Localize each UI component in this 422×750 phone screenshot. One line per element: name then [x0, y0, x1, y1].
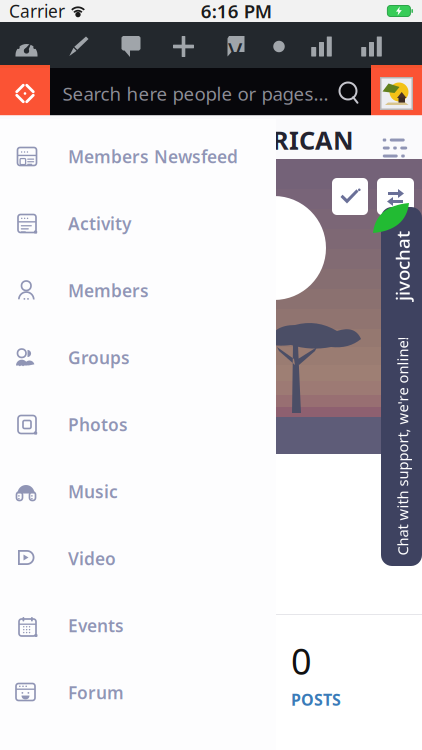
button[interactable]: Forum [0, 659, 276, 726]
button[interactable]: Profile [371, 68, 422, 119]
button[interactable]: Menu [384, 137, 406, 158]
button[interactable]: Music [0, 458, 276, 525]
staticText: Events [68, 614, 124, 637]
button[interactable]: Dashboard [0, 26, 53, 66]
button[interactable]: New [157, 26, 210, 66]
staticText: AFRICAN [240, 123, 354, 157]
staticText: Members Newsfeed [68, 145, 238, 168]
button[interactable]: More [261, 26, 297, 66]
button[interactable]: Photos [0, 391, 276, 458]
button[interactable]: Groups [0, 324, 276, 391]
staticText: jivochat [367, 254, 422, 278]
button[interactable]: Yoast SEO [210, 26, 261, 66]
staticText: 6:16 PM [201, 0, 272, 23]
button[interactable]: Close [0, 68, 50, 119]
button[interactable]: Analytics [346, 26, 397, 66]
staticText: Music [68, 480, 118, 503]
button[interactable]: Members [0, 257, 276, 324]
staticText: 0 [291, 637, 312, 685]
staticText: Video [68, 547, 116, 570]
staticText: Members [68, 279, 149, 302]
button[interactable]: Comments [105, 26, 157, 66]
staticText: Search here people or pages... [62, 81, 328, 106]
staticText: Groups [68, 346, 130, 369]
staticText: Carrier [9, 0, 65, 22]
button[interactable]: Share [377, 178, 414, 215]
button[interactable]: Members Newsfeed [0, 123, 276, 190]
button[interactable]: Accept [332, 178, 368, 215]
button[interactable]: Customize [53, 26, 105, 66]
button[interactable]: Chat with support [381, 207, 422, 566]
staticText: THE NETWORK* [240, 157, 333, 173]
staticText: y [228, 29, 242, 66]
button[interactable]: Search [336, 80, 362, 106]
button[interactable]: Statistics [297, 26, 346, 66]
button[interactable]: Video [0, 525, 276, 592]
staticText: Photos [68, 413, 128, 436]
staticText: Chat with support, we're online! [293, 436, 422, 456]
staticText: Activity [68, 212, 131, 235]
button[interactable]: Activity [0, 190, 276, 257]
staticText: Forum [68, 681, 124, 704]
button[interactable]: Events [0, 592, 276, 659]
staticText: POSTS [291, 689, 341, 710]
